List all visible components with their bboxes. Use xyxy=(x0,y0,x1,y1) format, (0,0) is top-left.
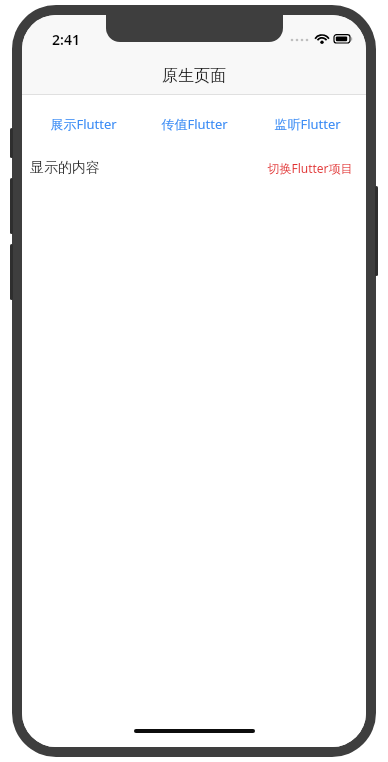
staticText: 原生页面 xyxy=(162,66,226,86)
button[interactable]: 显示的内容 xyxy=(28,153,102,183)
staticText: 2:41 xyxy=(52,30,80,49)
staticText: 显示的内容 xyxy=(30,159,100,177)
button[interactable]: 传值Flutter xyxy=(136,109,252,139)
staticText: 监听Flutter xyxy=(274,115,341,133)
staticText: 切换Flutter项目 xyxy=(267,160,353,176)
button[interactable]: 监听Flutter xyxy=(252,109,362,139)
staticText: 传值Flutter xyxy=(161,115,228,133)
button[interactable]: 展示Flutter xyxy=(30,109,136,139)
button[interactable]: 切换Flutter项目 xyxy=(265,154,355,182)
staticText: 展示Flutter xyxy=(50,115,117,133)
